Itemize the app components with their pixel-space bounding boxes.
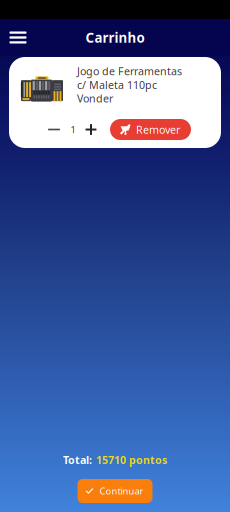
staticText: Jogo de Ferramentas <box>77 64 182 78</box>
staticText: 1 <box>70 123 75 136</box>
staticText: Remover <box>136 122 180 137</box>
staticText: 15710 pontos <box>96 453 167 467</box>
staticText: Vonder <box>77 91 113 105</box>
button[interactable]: Continuar <box>77 479 152 503</box>
button[interactable]: Increase quantity <box>79 119 103 140</box>
staticText: Carrinho <box>85 29 144 46</box>
button[interactable]: Remover <box>110 119 206 140</box>
button[interactable]: Decrease quantity <box>41 119 67 140</box>
staticText: Total: <box>63 453 92 467</box>
staticText: c/ Maleta 110pc <box>77 78 157 92</box>
button[interactable]: Menu <box>0 19 36 56</box>
staticText: Continuar <box>99 485 143 497</box>
